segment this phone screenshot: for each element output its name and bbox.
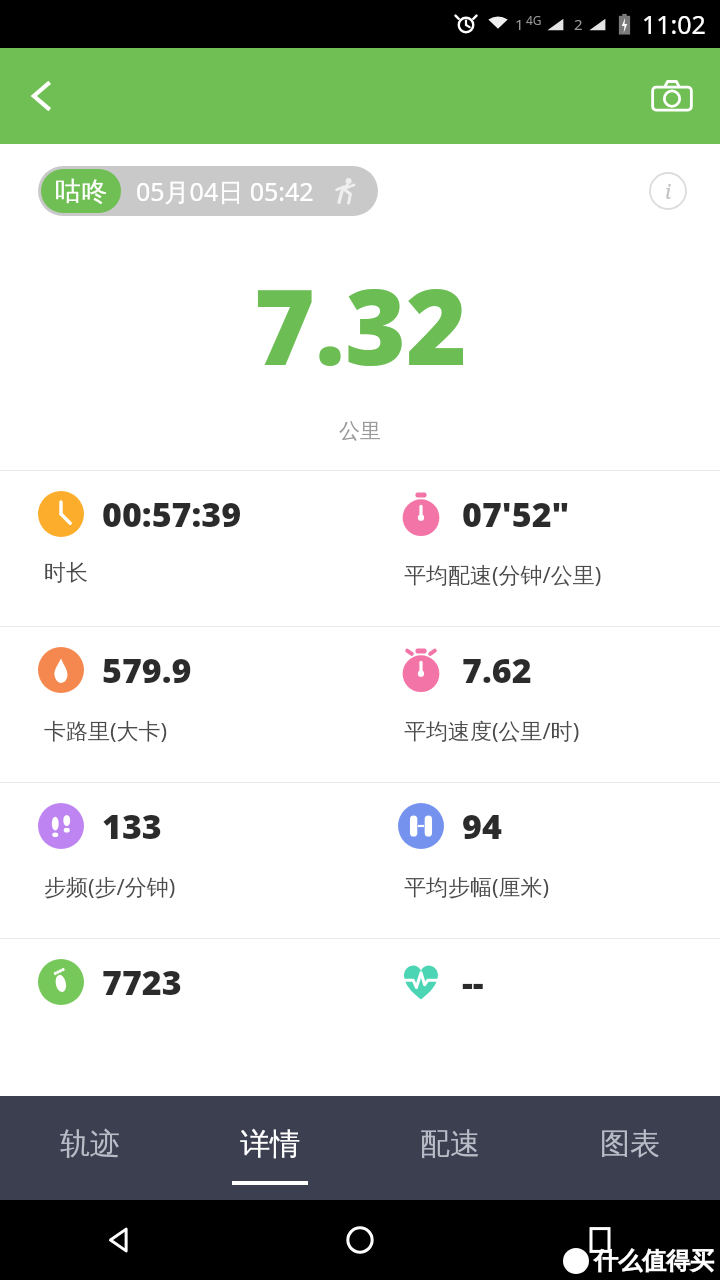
staticText: 133: [102, 803, 162, 849]
staticText: --: [462, 959, 484, 1005]
button[interactable]: 7723: [0, 939, 360, 1094]
staticText: 平均速度(公里/时): [404, 715, 580, 745]
staticText: 咕咚: [55, 175, 107, 208]
staticText: 平均步幅(厘米): [404, 871, 550, 901]
button[interactable]: Home: [240, 1200, 480, 1280]
staticText: 4G: [526, 12, 542, 28]
staticText: 时长: [44, 559, 88, 587]
staticText: 步频(步/分钟): [44, 871, 176, 901]
button[interactable]: --: [360, 939, 720, 1094]
staticText: 2: [574, 14, 583, 34]
staticText: 05月04日 05:42: [136, 174, 314, 208]
staticText: 公里: [339, 418, 381, 444]
button[interactable]: Camera: [638, 62, 706, 130]
staticText: 00:57:39: [102, 491, 242, 537]
staticText: 7723: [102, 959, 182, 1005]
button[interactable]: 咕咚: [38, 166, 378, 216]
staticText: 7.32: [254, 254, 467, 396]
staticText: 平均配速(分钟/公里): [404, 559, 602, 589]
button[interactable]: Back: [0, 1200, 240, 1280]
staticText: 卡路里(大卡): [44, 715, 168, 745]
button[interactable]: Recents: [480, 1200, 720, 1280]
staticText: i: [665, 178, 672, 205]
button[interactable]: 00:57:39: [0, 471, 360, 626]
button[interactable]: 7.62: [360, 627, 720, 782]
staticText: 详情: [240, 1125, 300, 1163]
button[interactable]: Info: [642, 165, 694, 217]
staticText: 7.62: [462, 647, 532, 693]
staticText: 94: [462, 803, 502, 849]
staticText: 图表: [600, 1125, 660, 1163]
button[interactable]: 133: [0, 783, 360, 938]
button[interactable]: 配速: [360, 1096, 540, 1200]
staticText: 轨迹: [60, 1125, 120, 1163]
button[interactable]: 579.9: [0, 627, 360, 782]
button[interactable]: 详情: [180, 1096, 360, 1200]
staticText: 1: [515, 14, 524, 34]
button[interactable]: 轨迹: [0, 1096, 180, 1200]
button[interactable]: 图表: [540, 1096, 720, 1200]
button[interactable]: 94: [360, 783, 720, 938]
staticText: 配速: [420, 1125, 480, 1163]
button[interactable]: 07'52": [360, 471, 720, 626]
staticText: 什么值得买: [594, 1246, 714, 1276]
button[interactable]: Back: [10, 64, 74, 128]
staticText: 579.9: [102, 647, 192, 693]
staticText: 07'52": [462, 491, 570, 537]
staticText: 11:02: [642, 7, 706, 41]
